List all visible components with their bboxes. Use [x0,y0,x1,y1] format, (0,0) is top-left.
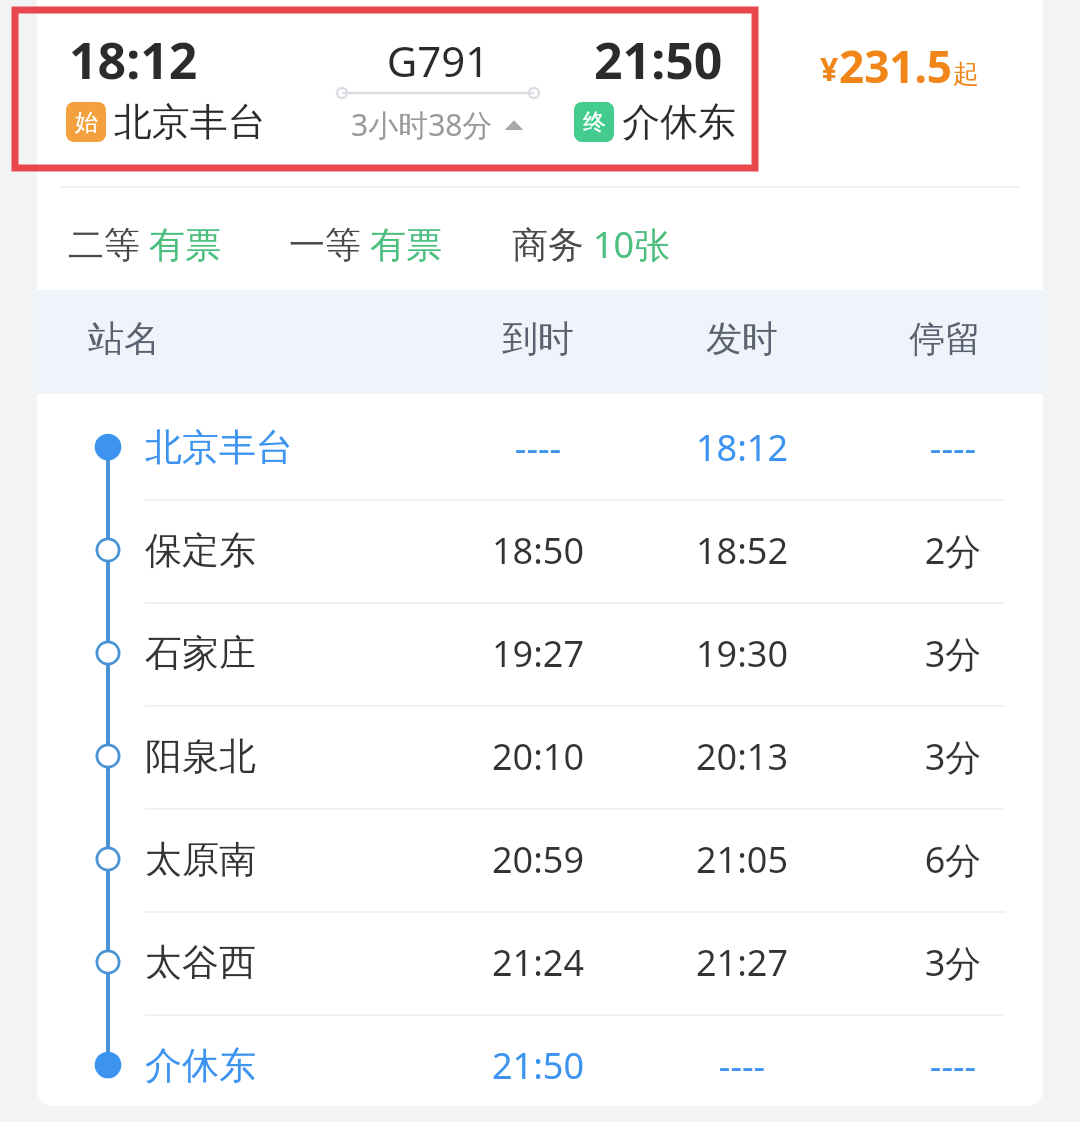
staticText: ¥ [820,47,839,91]
button[interactable]: 北京丰台 [37,396,1043,499]
staticText: 21:24 [438,938,638,987]
staticText: ---- [642,1041,842,1090]
staticText: 商务 [512,222,584,267]
staticText: G791 [305,32,571,89]
button[interactable]: 阳泉北 [37,705,1043,808]
button[interactable]: 介休东 [37,1014,1043,1117]
staticText: 10张 [593,220,671,269]
staticText: 21:27 [642,938,842,987]
staticText: 到时 [438,316,638,361]
button[interactable]: 商务 [512,220,671,269]
staticText: 终 [583,108,606,137]
staticText: 19:30 [642,629,842,678]
staticText: 站名 [88,316,160,361]
staticText: 有票 [149,222,221,267]
button[interactable]: 太原南 [37,808,1043,911]
staticText: 20:13 [642,732,842,781]
staticText: 20:10 [438,732,638,781]
staticText: 北京丰台 [114,98,266,146]
staticText: 20:59 [438,835,638,884]
button[interactable]: 一等 [289,222,442,267]
staticText: ---- [853,1041,1053,1090]
staticText: 2分 [853,526,1053,575]
staticText: 二等 [68,222,140,267]
button[interactable]: 二等 [68,222,221,267]
staticText: 一等 [289,222,361,267]
staticText: 北京丰台 [145,424,293,471]
staticText: 太原南 [145,836,256,883]
staticText: 21:05 [642,835,842,884]
staticText: 231.5 [839,36,953,96]
button[interactable]: 保定东 [37,499,1043,602]
staticText: 21:50 [438,1041,638,1090]
staticText: 6分 [853,835,1053,884]
staticText: 18:12 [69,26,198,94]
staticText: 3分 [853,732,1053,781]
staticText: 介休东 [622,98,736,146]
staticText: 发时 [642,316,842,361]
staticText: 3小时38分 [351,104,493,145]
staticText: 介休东 [145,1042,256,1089]
staticText: 始 [75,108,98,137]
button[interactable]: 18:12 [37,0,1043,186]
staticText: 19:27 [438,629,638,678]
staticText: 停留 [845,316,1045,361]
staticText: 阳泉北 [145,733,256,780]
button[interactable]: 太谷西 [37,911,1043,1014]
staticText: 保定东 [145,527,256,574]
staticText: 起 [953,58,979,91]
staticText: ---- [853,423,1053,472]
staticText: 石家庄 [145,630,256,677]
staticText: 太谷西 [145,939,256,986]
staticText: 有票 [370,222,442,267]
staticText: 18:12 [642,423,842,472]
staticText: 21:50 [594,26,723,94]
staticText: ---- [438,423,638,472]
staticText: 18:52 [642,526,842,575]
staticText: 3分 [853,938,1053,987]
staticText: 3分 [853,629,1053,678]
button[interactable]: 石家庄 [37,602,1043,705]
staticText: 18:50 [438,526,638,575]
